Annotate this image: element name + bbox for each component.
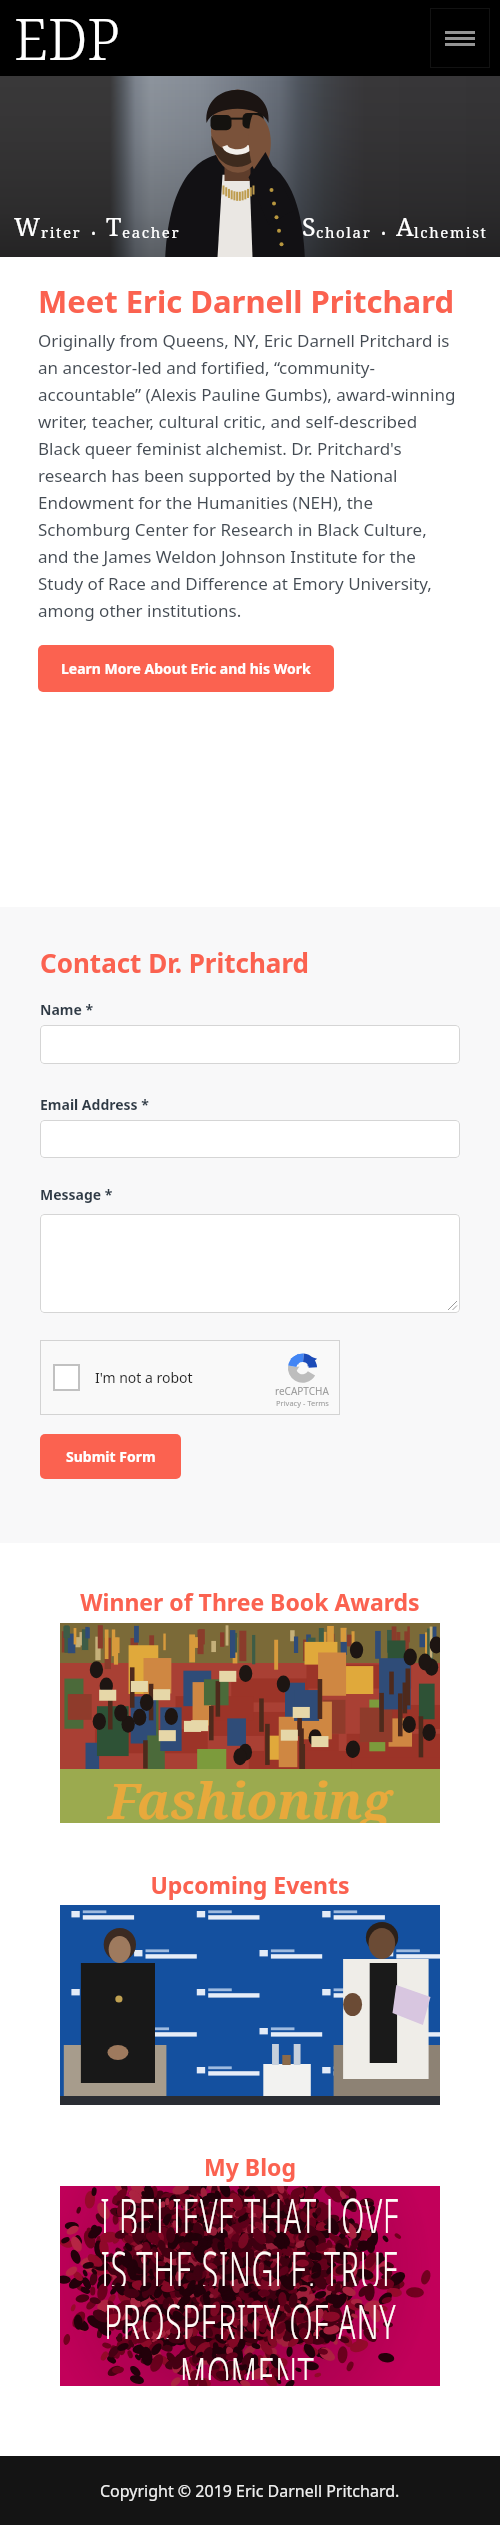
staticText: • <box>372 225 396 241</box>
button[interactable] <box>40 1214 460 1313</box>
staticText: Fashioning <box>108 1766 392 1823</box>
button[interactable]: Submit Form <box>40 1434 181 1479</box>
staticText: W <box>14 209 41 243</box>
staticText: PROSPERITY OF ANY <box>104 2286 397 2339</box>
staticText: T <box>106 209 122 243</box>
staticText: • <box>82 225 106 241</box>
staticText: EDP <box>14 0 121 74</box>
staticText: Copyright © 2019 Eric Darnell Pritchard. <box>100 2480 400 2502</box>
staticText: S <box>302 209 316 243</box>
staticText: Privacy - Terms <box>276 1398 329 1408</box>
staticText: cholar <box>316 222 372 242</box>
staticText: Submit Form <box>66 1447 156 1466</box>
button[interactable]: I BELIEVE THAT LOVE <box>60 2186 440 2386</box>
staticText: reCAPTCHA <box>275 1384 329 1398</box>
staticText: Name * <box>40 1000 94 1019</box>
button[interactable]: Open navigation menu <box>430 8 490 68</box>
staticText: lchemist <box>414 222 488 242</box>
button[interactable] <box>40 1120 460 1158</box>
staticText: I BELIEVE THAT LOVE <box>100 2186 401 2233</box>
staticText: MOMENT. <box>180 2339 321 2380</box>
button[interactable] <box>40 1025 460 1064</box>
staticText: Winner of Three Book Awards <box>0 1586 500 1617</box>
button[interactable]: Fashioning <box>60 1623 440 1823</box>
staticText: Email Address * <box>40 1095 149 1114</box>
staticText: A <box>396 209 414 243</box>
staticText: riter <box>41 222 82 242</box>
button[interactable] <box>60 1905 440 2105</box>
staticText: Learn More About Eric and his Work <box>61 659 311 678</box>
staticText: Upcoming Events <box>0 1869 500 1900</box>
button[interactable]: I'm not a robot reCAPTCHA <box>40 1340 340 1415</box>
staticText: Originally from Queens, NY, Eric Darnell… <box>38 329 460 622</box>
staticText: Meet Eric Darnell Pritchard <box>38 280 454 322</box>
staticText: Message * <box>40 1185 113 1204</box>
button[interactable]: Learn More About Eric and his Work <box>38 645 334 692</box>
staticText: IS THE SINGLE, TRUE <box>100 2233 399 2286</box>
staticText: Contact Dr. Pritchard <box>40 945 309 980</box>
staticText: I'm not a robot <box>95 1368 193 1387</box>
staticText: eacher <box>122 222 181 242</box>
staticText: My Blog <box>0 2151 500 2182</box>
